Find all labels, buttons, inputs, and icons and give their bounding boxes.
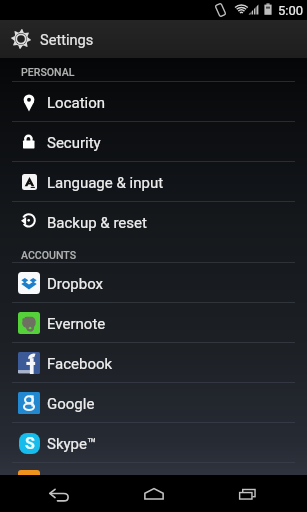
button[interactable]: Backup & reset — [0, 202, 307, 242]
button[interactable]: Google — [0, 383, 307, 423]
staticText: Settings — [40, 31, 94, 48]
button[interactable]: Security — [0, 122, 307, 162]
staticText: Dropbox — [47, 275, 104, 293]
button[interactable]: S — [0, 423, 307, 463]
staticText: Google — [47, 395, 95, 413]
staticText: 5:00 — [278, 3, 304, 18]
button[interactable]: Dropbox — [0, 263, 307, 303]
staticText: Skype™ — [47, 435, 97, 453]
staticText: Location — [47, 94, 106, 112]
button[interactable]: Language & input — [0, 162, 307, 202]
staticText: ACCOUNTS — [21, 249, 77, 261]
button[interactable]: Evernote — [0, 303, 307, 343]
button[interactable]: Recent apps — [213, 475, 283, 512]
button[interactable]: Home — [119, 475, 189, 512]
staticText: Language & input — [47, 174, 164, 192]
button[interactable]: Location — [0, 82, 307, 122]
staticText: Backup & reset — [47, 214, 147, 232]
button[interactable]: Next account — [18, 470, 40, 475]
staticText: Evernote — [47, 315, 106, 333]
staticText: Facebook — [47, 355, 113, 373]
button[interactable]: Facebook — [0, 343, 307, 383]
button[interactable]: Settings — [0, 20, 307, 58]
button[interactable]: Back — [24, 475, 94, 512]
staticText: Security — [47, 134, 101, 152]
staticText: PERSONAL — [21, 66, 75, 78]
staticText: S — [25, 434, 35, 453]
